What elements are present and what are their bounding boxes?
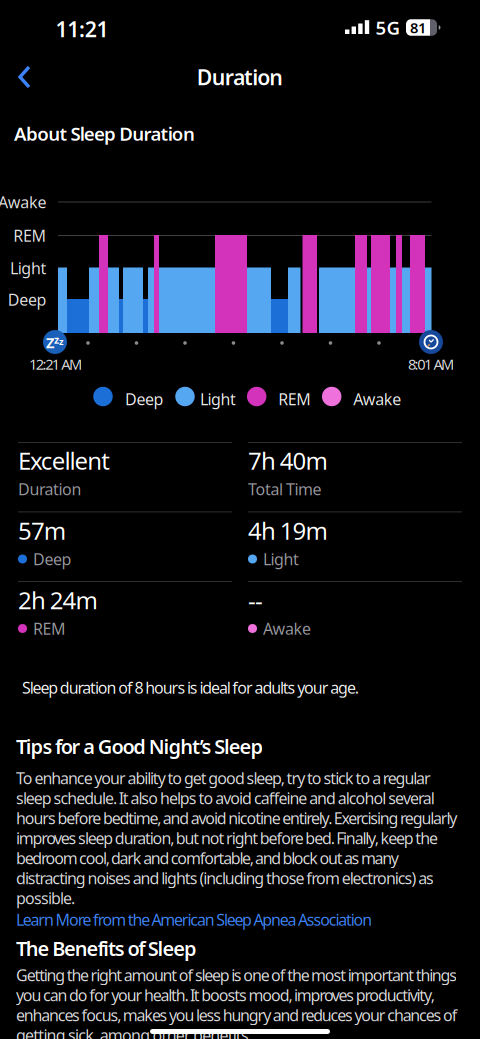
staticText: 2h 24m: [18, 584, 97, 616]
staticText: 81: [410, 18, 426, 37]
staticText: Deep: [125, 388, 163, 410]
staticText: REM: [13, 225, 46, 246]
staticText: Learn More from the American Sleep Apnea…: [16, 909, 372, 930]
button[interactable]: Back: [8, 60, 42, 94]
staticText: The Benefits of Sleep: [16, 935, 197, 962]
staticText: Light: [263, 548, 299, 570]
staticText: Deep: [8, 289, 46, 310]
staticText: z: [54, 332, 59, 347]
staticText: Light: [10, 257, 46, 279]
staticText: hours before bedtime, and avoid nicotine…: [16, 807, 457, 829]
staticText: 4h 19m: [248, 514, 327, 546]
staticText: Total Time: [248, 478, 321, 500]
staticText: Z: [46, 333, 54, 352]
staticText: Duration: [18, 478, 81, 500]
staticText: Light: [200, 388, 236, 410]
staticText: 8:01 AM: [408, 354, 454, 374]
staticText: 11:21: [55, 15, 109, 43]
staticText: z: [59, 335, 64, 348]
staticText: improves sleep duration, but not right b…: [16, 827, 438, 849]
staticText: 7h 40m: [248, 444, 327, 476]
staticText: enhances focus, makes you less hungry an…: [16, 1004, 458, 1026]
staticText: REM: [278, 388, 311, 410]
staticText: Awake: [263, 618, 311, 639]
staticText: possible.: [16, 887, 75, 909]
staticText: To enhance your ability to get good slee…: [16, 767, 431, 789]
staticText: Tips for a Good Night’s Sleep: [16, 733, 263, 760]
staticText: sleep schedule. It also helps to avoid c…: [16, 787, 435, 809]
staticText: 12:21 AM: [29, 354, 82, 374]
staticText: distracting noises and lights (including…: [16, 867, 434, 889]
staticText: Deep: [33, 548, 71, 570]
staticText: REM: [33, 618, 66, 639]
staticText: Duration: [197, 63, 283, 91]
staticText: Awake: [353, 388, 401, 410]
staticText: bedroom cool, dark and comfortable, and …: [16, 847, 399, 869]
staticText: About Sleep Duration: [14, 121, 195, 146]
staticText: Excellent: [18, 444, 110, 476]
staticText: 5G: [375, 15, 400, 40]
staticText: you can do for your health. It boosts mo…: [16, 984, 435, 1006]
button[interactable]: Learn More from the American Sleep Apnea…: [16, 909, 372, 930]
staticText: Getting the right amount of sleep is one…: [16, 964, 457, 986]
staticText: Sleep duration of 8 hours is ideal for a…: [22, 677, 359, 698]
staticText: getting sick, among other benefits.: [16, 1024, 252, 1039]
staticText: Awake: [0, 191, 46, 213]
staticText: --: [248, 584, 263, 616]
staticText: 57m: [18, 514, 66, 546]
